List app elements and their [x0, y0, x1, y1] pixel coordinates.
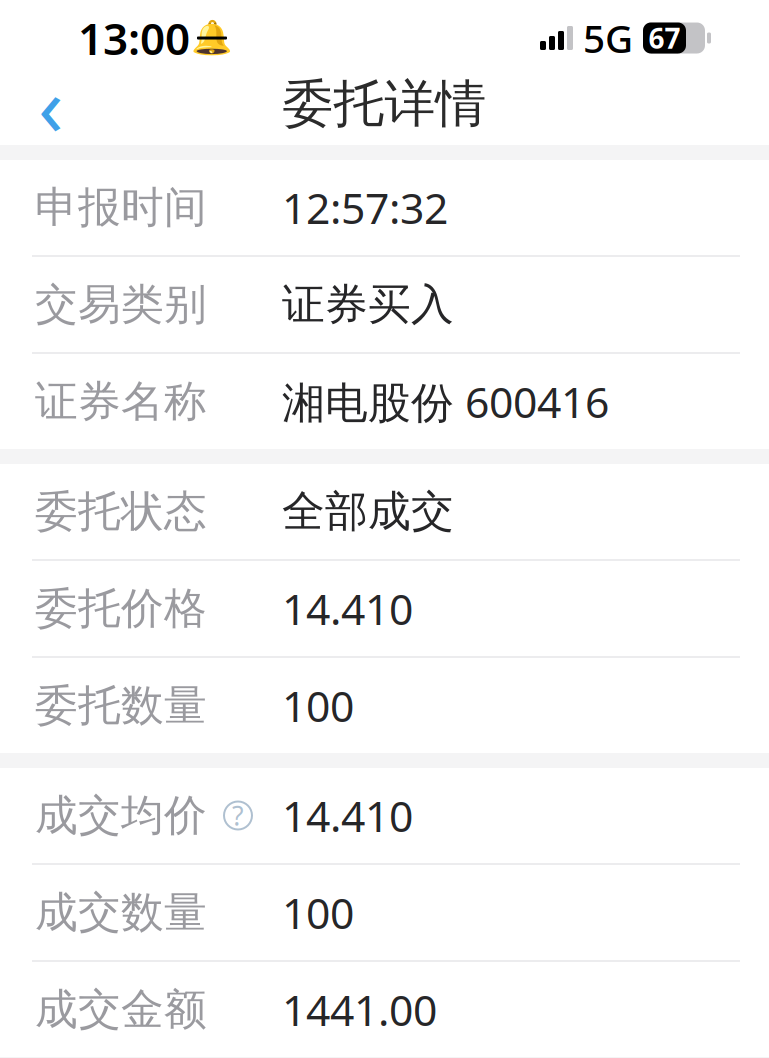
staticText: 14.410: [282, 580, 413, 637]
staticText: 证券买入: [282, 278, 454, 331]
staticText: 5G: [583, 12, 633, 64]
staticText: 成交数量: [35, 886, 207, 939]
staticText: ‹: [38, 49, 64, 159]
staticText: 14.410: [282, 787, 413, 844]
staticText: 成交均价: [35, 789, 207, 842]
staticText: 1441.00: [282, 981, 437, 1038]
button[interactable]: 返回: [16, 69, 86, 139]
staticText: 委托状态: [35, 485, 207, 538]
staticText: 成交金额: [35, 983, 207, 1036]
staticText: 申报时间: [35, 181, 207, 234]
staticText: 交易类别: [35, 278, 207, 331]
staticText: 🔔: [191, 19, 233, 57]
staticText: 委托数量: [35, 679, 207, 732]
staticText: 100: [282, 677, 354, 734]
staticText: 委托价格: [35, 582, 207, 635]
staticText: ?: [232, 798, 244, 833]
staticText: 委托详情: [282, 73, 486, 135]
staticText: 67: [648, 19, 680, 57]
staticText: 湘电股份 600416: [282, 373, 609, 430]
staticText: 13:00: [78, 9, 190, 67]
staticText: 12:57:32: [282, 179, 448, 236]
staticText: 全部成交: [282, 485, 454, 538]
staticText: 100: [282, 884, 354, 941]
button[interactable]: 说明: [220, 797, 256, 833]
staticText: 证券名称: [35, 375, 207, 428]
